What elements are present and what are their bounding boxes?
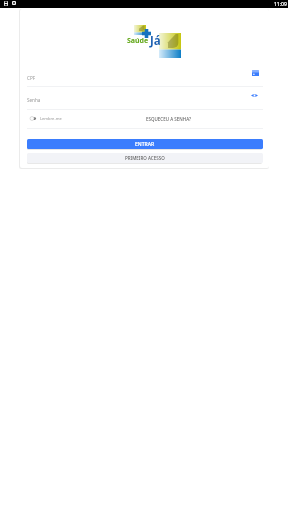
button[interactable]: ESQUECEU A SENHA? [142, 113, 196, 124]
staticText: Lembre-me [40, 116, 62, 121]
staticText: ENTRAR [135, 141, 155, 148]
button[interactable]: PRIMEIRO ACESSO [27, 153, 263, 163]
button[interactable]: CPF [27, 75, 263, 86]
button[interactable]: Mostrar senha [247, 88, 261, 102]
staticText: Saúde [127, 36, 149, 46]
button[interactable]: Documento [248, 66, 262, 80]
button[interactable]: ENTRAR [27, 139, 263, 149]
button[interactable]: Lembre-me [30, 113, 62, 124]
staticText: ESQUECEU A SENHA? [146, 116, 192, 122]
staticText: Já [150, 33, 161, 49]
staticText: Senha [27, 97, 41, 103]
staticText: CPF [27, 75, 36, 81]
staticText: PRIMEIRO ACESSO [125, 155, 165, 161]
button[interactable]: Senha [27, 97, 263, 108]
staticText: 11:09 [274, 1, 287, 8]
